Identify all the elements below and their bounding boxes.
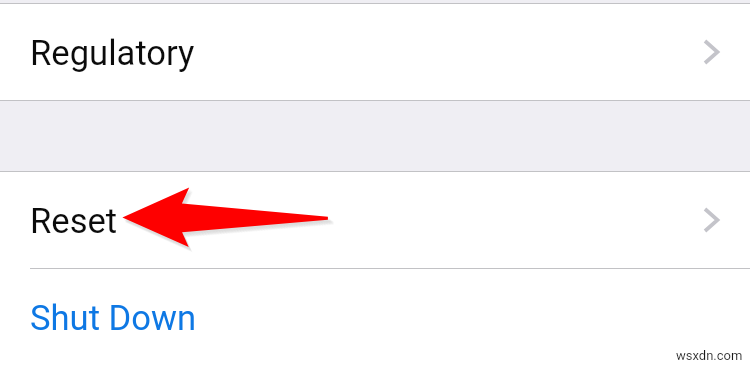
button[interactable]: Shut Down bbox=[0, 269, 750, 365]
staticText: Reset bbox=[30, 201, 118, 242]
button[interactable]: Regulatory bbox=[0, 4, 750, 100]
other: Open bbox=[703, 39, 720, 65]
staticText: Regulatory bbox=[30, 33, 195, 74]
other: Open bbox=[703, 207, 720, 233]
staticText: Shut Down bbox=[30, 298, 197, 339]
button[interactable]: Reset bbox=[0, 172, 750, 268]
staticText: wsxdn.com bbox=[676, 348, 743, 363]
